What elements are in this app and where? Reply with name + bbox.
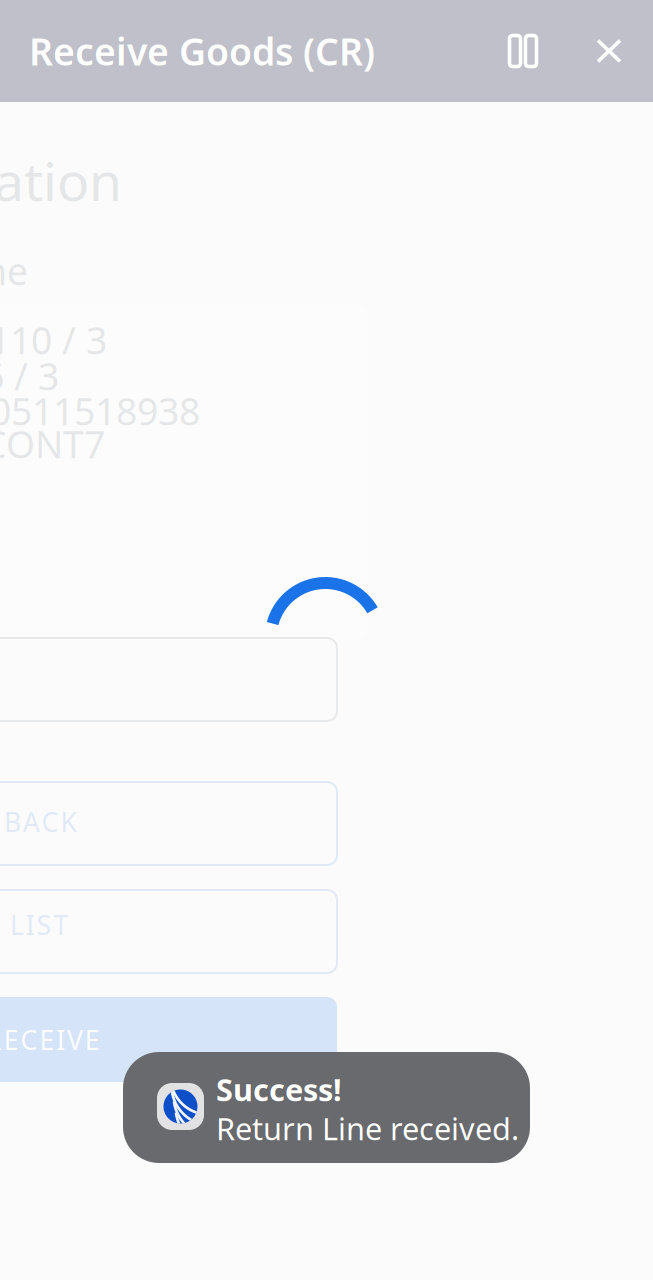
staticText: 6 / 3 xyxy=(0,351,59,401)
staticText: BACK xyxy=(4,804,77,839)
staticText: Return Line received. xyxy=(216,1108,519,1149)
button[interactable]: Success! xyxy=(123,1052,530,1163)
staticText: RECEIVE xyxy=(0,1022,100,1057)
button[interactable]: LIST xyxy=(0,890,337,973)
staticText: RMA0110 / 3 xyxy=(0,315,107,365)
button[interactable]: Split view xyxy=(500,25,546,77)
staticText: Line xyxy=(0,246,28,296)
staticText: LIST xyxy=(10,907,68,942)
staticText: Receive Goods (CR) xyxy=(29,26,375,76)
staticText: 910511518938 xyxy=(0,386,200,436)
button[interactable]: Close xyxy=(586,25,632,77)
staticText: Success! xyxy=(216,1069,342,1110)
staticText: &CONT7 xyxy=(0,419,105,469)
button[interactable]: BACK xyxy=(0,782,337,865)
button[interactable]: RECEIVE xyxy=(0,997,337,1082)
staticText: Location xyxy=(0,145,122,216)
